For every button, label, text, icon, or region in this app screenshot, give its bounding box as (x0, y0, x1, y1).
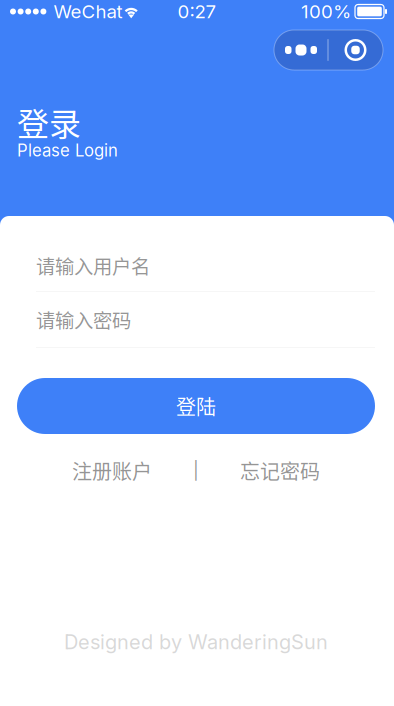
staticText: 注册账户 (72, 456, 152, 485)
staticText: 100% (301, 0, 351, 23)
button[interactable]: 请输入用户名 (36, 240, 375, 292)
staticText: 登陆 (176, 391, 216, 420)
staticText: 请输入用户名 (36, 251, 150, 279)
button[interactable]: 请输入密码 (36, 292, 375, 348)
button[interactable]: Mini program menu (274, 30, 383, 70)
staticText: | (193, 460, 199, 481)
button[interactable]: 忘记密码 (200, 450, 360, 491)
staticText: 忘记密码 (240, 456, 320, 485)
staticText: WeChat (53, 0, 122, 23)
staticText: Please Login (17, 140, 118, 160)
button[interactable]: 登陆 (17, 378, 375, 434)
staticText: Designed by WanderingSun (64, 630, 328, 654)
button[interactable]: 注册账户 (32, 450, 192, 491)
staticText: 请输入密码 (36, 305, 131, 333)
staticText: 0:27 (177, 0, 216, 23)
staticText: 登录 (17, 99, 81, 145)
